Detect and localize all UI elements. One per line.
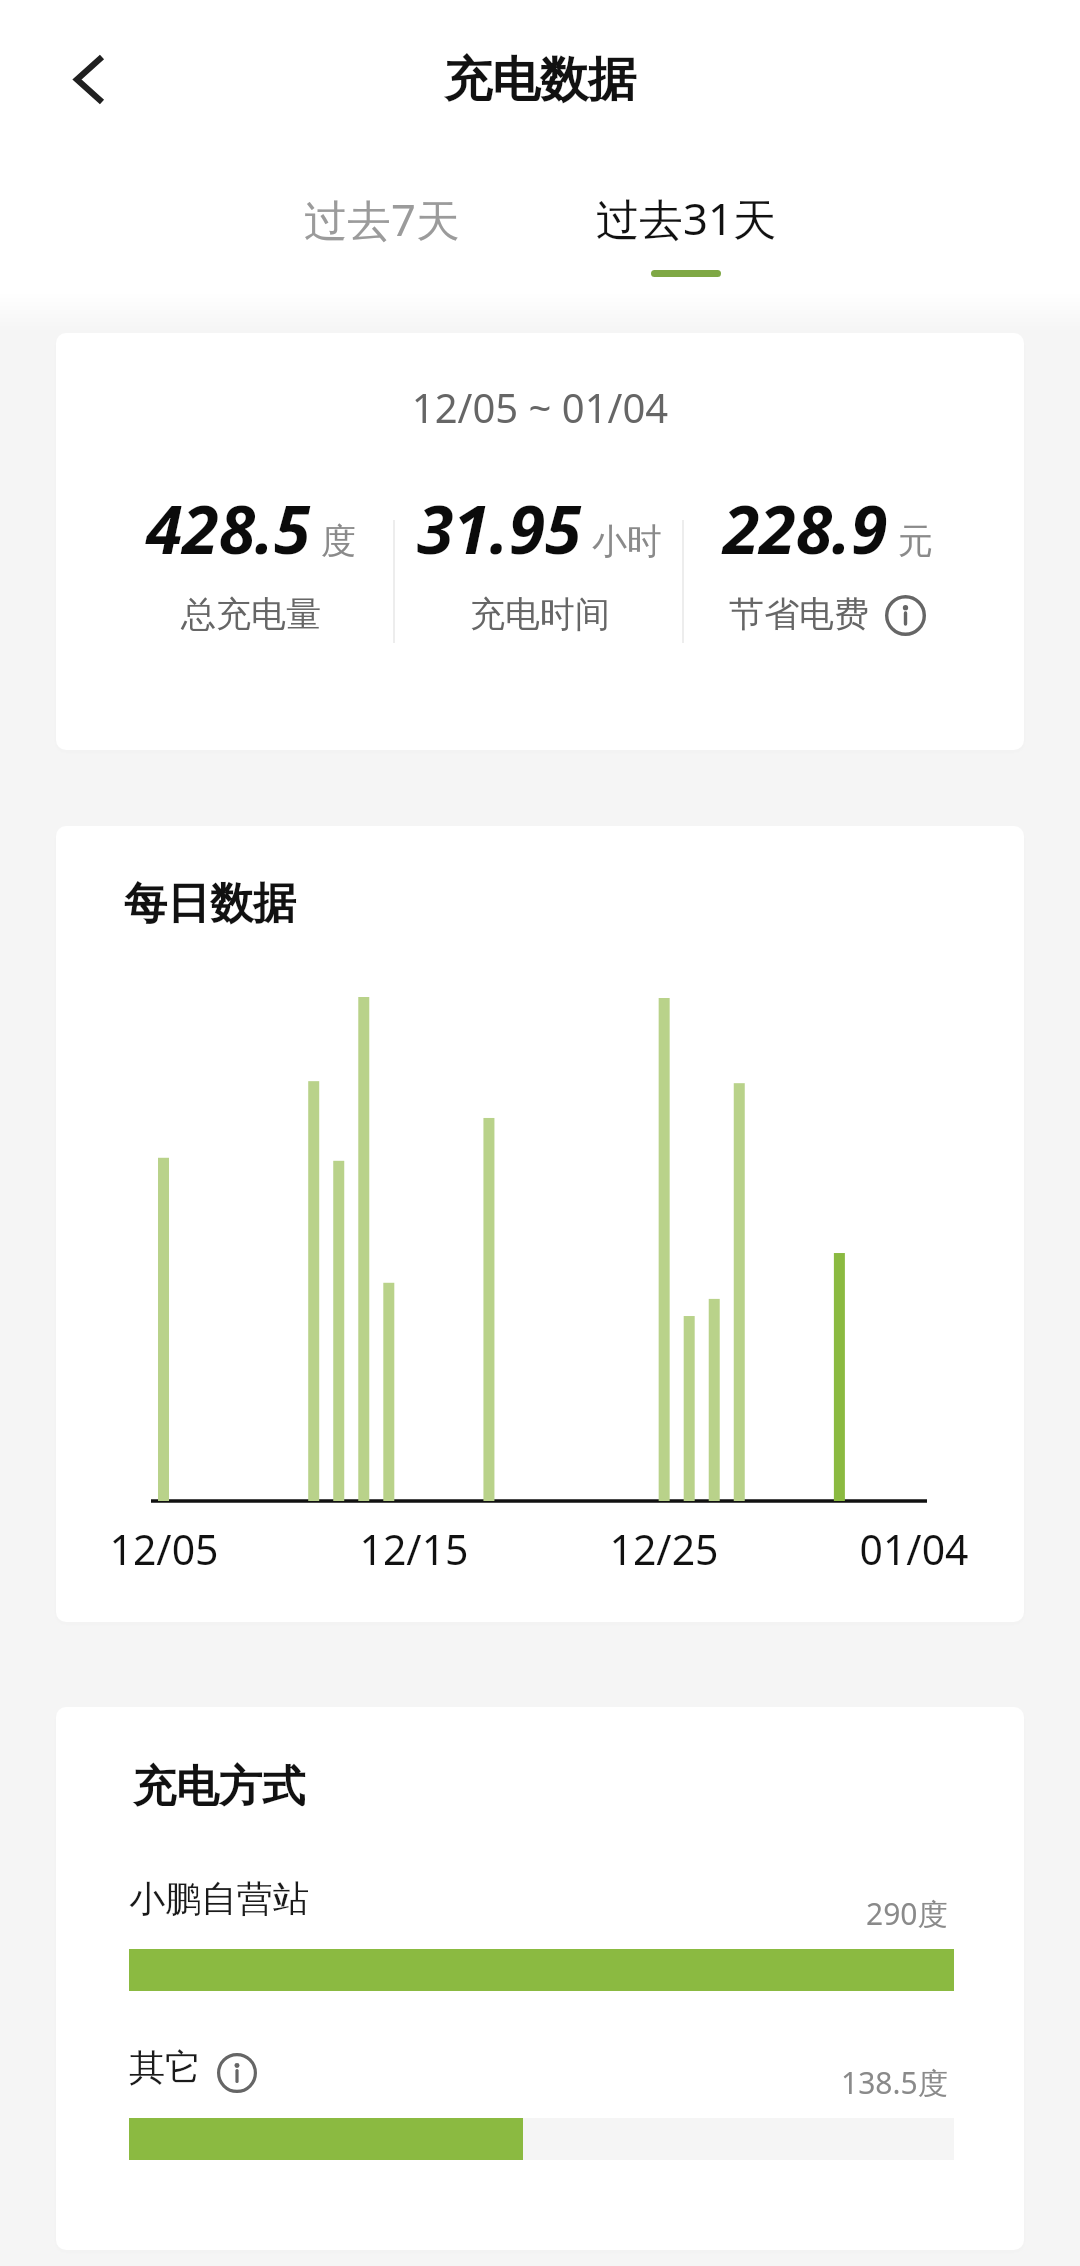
staticText: 过去7天 xyxy=(304,189,460,248)
staticText: 12/15 xyxy=(354,1521,474,1577)
staticText: 充电时间 xyxy=(470,592,610,636)
staticText: 31.95 xyxy=(417,483,582,573)
staticText: 节省电费 xyxy=(729,592,869,636)
staticText: 12/05 ~ 01/04 xyxy=(56,380,1024,434)
button[interactable]: Back xyxy=(46,38,128,120)
staticText: 01/04 xyxy=(854,1521,974,1577)
button[interactable]: 过去7天 xyxy=(229,189,535,289)
staticText: 小鹏自营站 xyxy=(129,1876,309,1921)
button[interactable]: Info about savings xyxy=(885,595,926,636)
staticText: 充电方式 xyxy=(133,1760,305,1814)
staticText: 138.5度 xyxy=(841,2062,948,2103)
staticText: 428.5 xyxy=(146,483,311,573)
staticText: 12/05 xyxy=(104,1521,224,1577)
staticText: 小时 xyxy=(592,519,662,563)
staticText: 290度 xyxy=(866,1893,948,1934)
button[interactable]: 过去31天 xyxy=(533,188,839,288)
staticText: 总充电量 xyxy=(181,592,321,636)
button[interactable]: Info about other stations xyxy=(217,2053,257,2093)
staticText: 其它 xyxy=(129,2045,201,2090)
staticText: 228.9 xyxy=(723,483,888,573)
staticText: 充电数据 xyxy=(444,50,636,110)
staticText: 元 xyxy=(898,519,933,563)
staticText: 度 xyxy=(321,519,356,563)
staticText: 每日数据 xyxy=(124,877,296,931)
staticText: 过去31天 xyxy=(596,188,777,247)
staticText: 12/25 xyxy=(604,1521,724,1577)
